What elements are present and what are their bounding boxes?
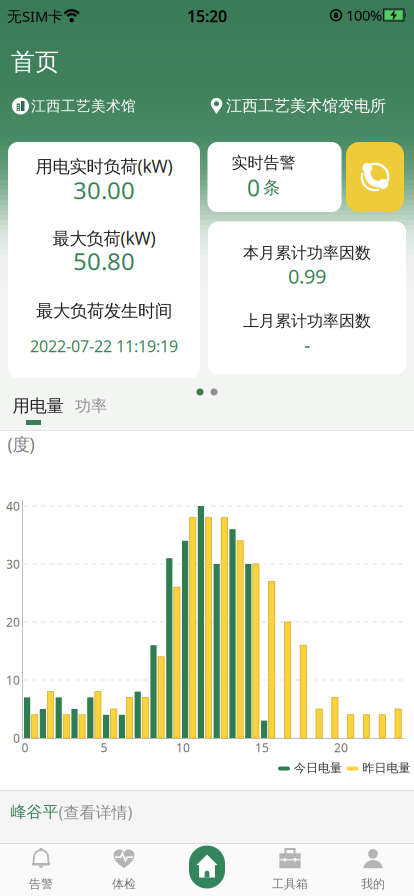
staticText: 今日电量 [294,761,342,775]
button[interactable]: 江西工艺美术馆 [12,97,136,115]
staticText: 15 [255,739,269,755]
staticText: 40 [6,498,20,514]
staticText: 功率 [75,396,107,416]
staticText: 20 [334,739,348,755]
staticText: 50.80 [73,245,135,277]
staticText: 昨日电量 [362,761,410,775]
staticText: 100% [346,5,382,25]
staticText: 0.99 [288,263,326,289]
staticText: 首页 [11,47,59,77]
staticText: 我的 [361,877,385,891]
button[interactable]: 拨打电话 [346,142,404,212]
button[interactable]: 首页 [185,845,229,888]
button[interactable]: 功率 [75,396,107,416]
button[interactable]: 江西工艺美术馆变电所 [210,96,386,116]
staticText: 10 [6,672,20,688]
button[interactable]: 峰谷平 [10,801,132,823]
staticText: 用电量 [12,395,63,417]
staticText: 30 [6,556,20,572]
staticText: (度) [7,432,34,455]
staticText: 江西工艺美术馆变电所 [226,96,386,116]
staticText: 5 [100,739,107,755]
button[interactable]: 体检 [86,844,162,894]
staticText: 实时告警 [231,153,295,173]
staticText: 体检 [112,877,136,891]
staticText: 最大负荷发生时间 [36,300,172,322]
staticText: 2022-07-22 11:19:19 [30,335,178,357]
staticText: 条 [263,177,280,198]
staticText: 最大负荷(kW) [52,226,155,249]
staticText: 10 [176,739,190,755]
staticText: (查看详情) [58,801,132,823]
staticText: 江西工艺美术馆 [31,97,136,115]
button[interactable]: 告警 [3,844,79,894]
staticText: 本月累计功率因数 [243,243,371,263]
staticText: 峰谷平 [10,802,58,822]
button[interactable]: 工具箱 [252,844,328,894]
staticText: 30.00 [73,174,135,206]
staticText: 无SIM卡 [7,6,63,26]
staticText: 工具箱 [272,877,308,891]
staticText: 0 [247,173,260,203]
button[interactable]: 我的 [335,844,411,894]
staticText: 0 [13,730,20,746]
staticText: 15:20 [187,5,227,27]
button[interactable]: 实时告警 [207,142,341,212]
staticText: 用电实时负荷(kW) [35,154,172,177]
staticText: 告警 [29,877,53,891]
staticText: 20 [6,614,20,630]
staticText: 上月累计功率因数 [243,311,371,331]
staticText: - [304,332,310,358]
staticText: 0 [21,739,28,755]
button[interactable]: 用电量 [12,395,63,417]
